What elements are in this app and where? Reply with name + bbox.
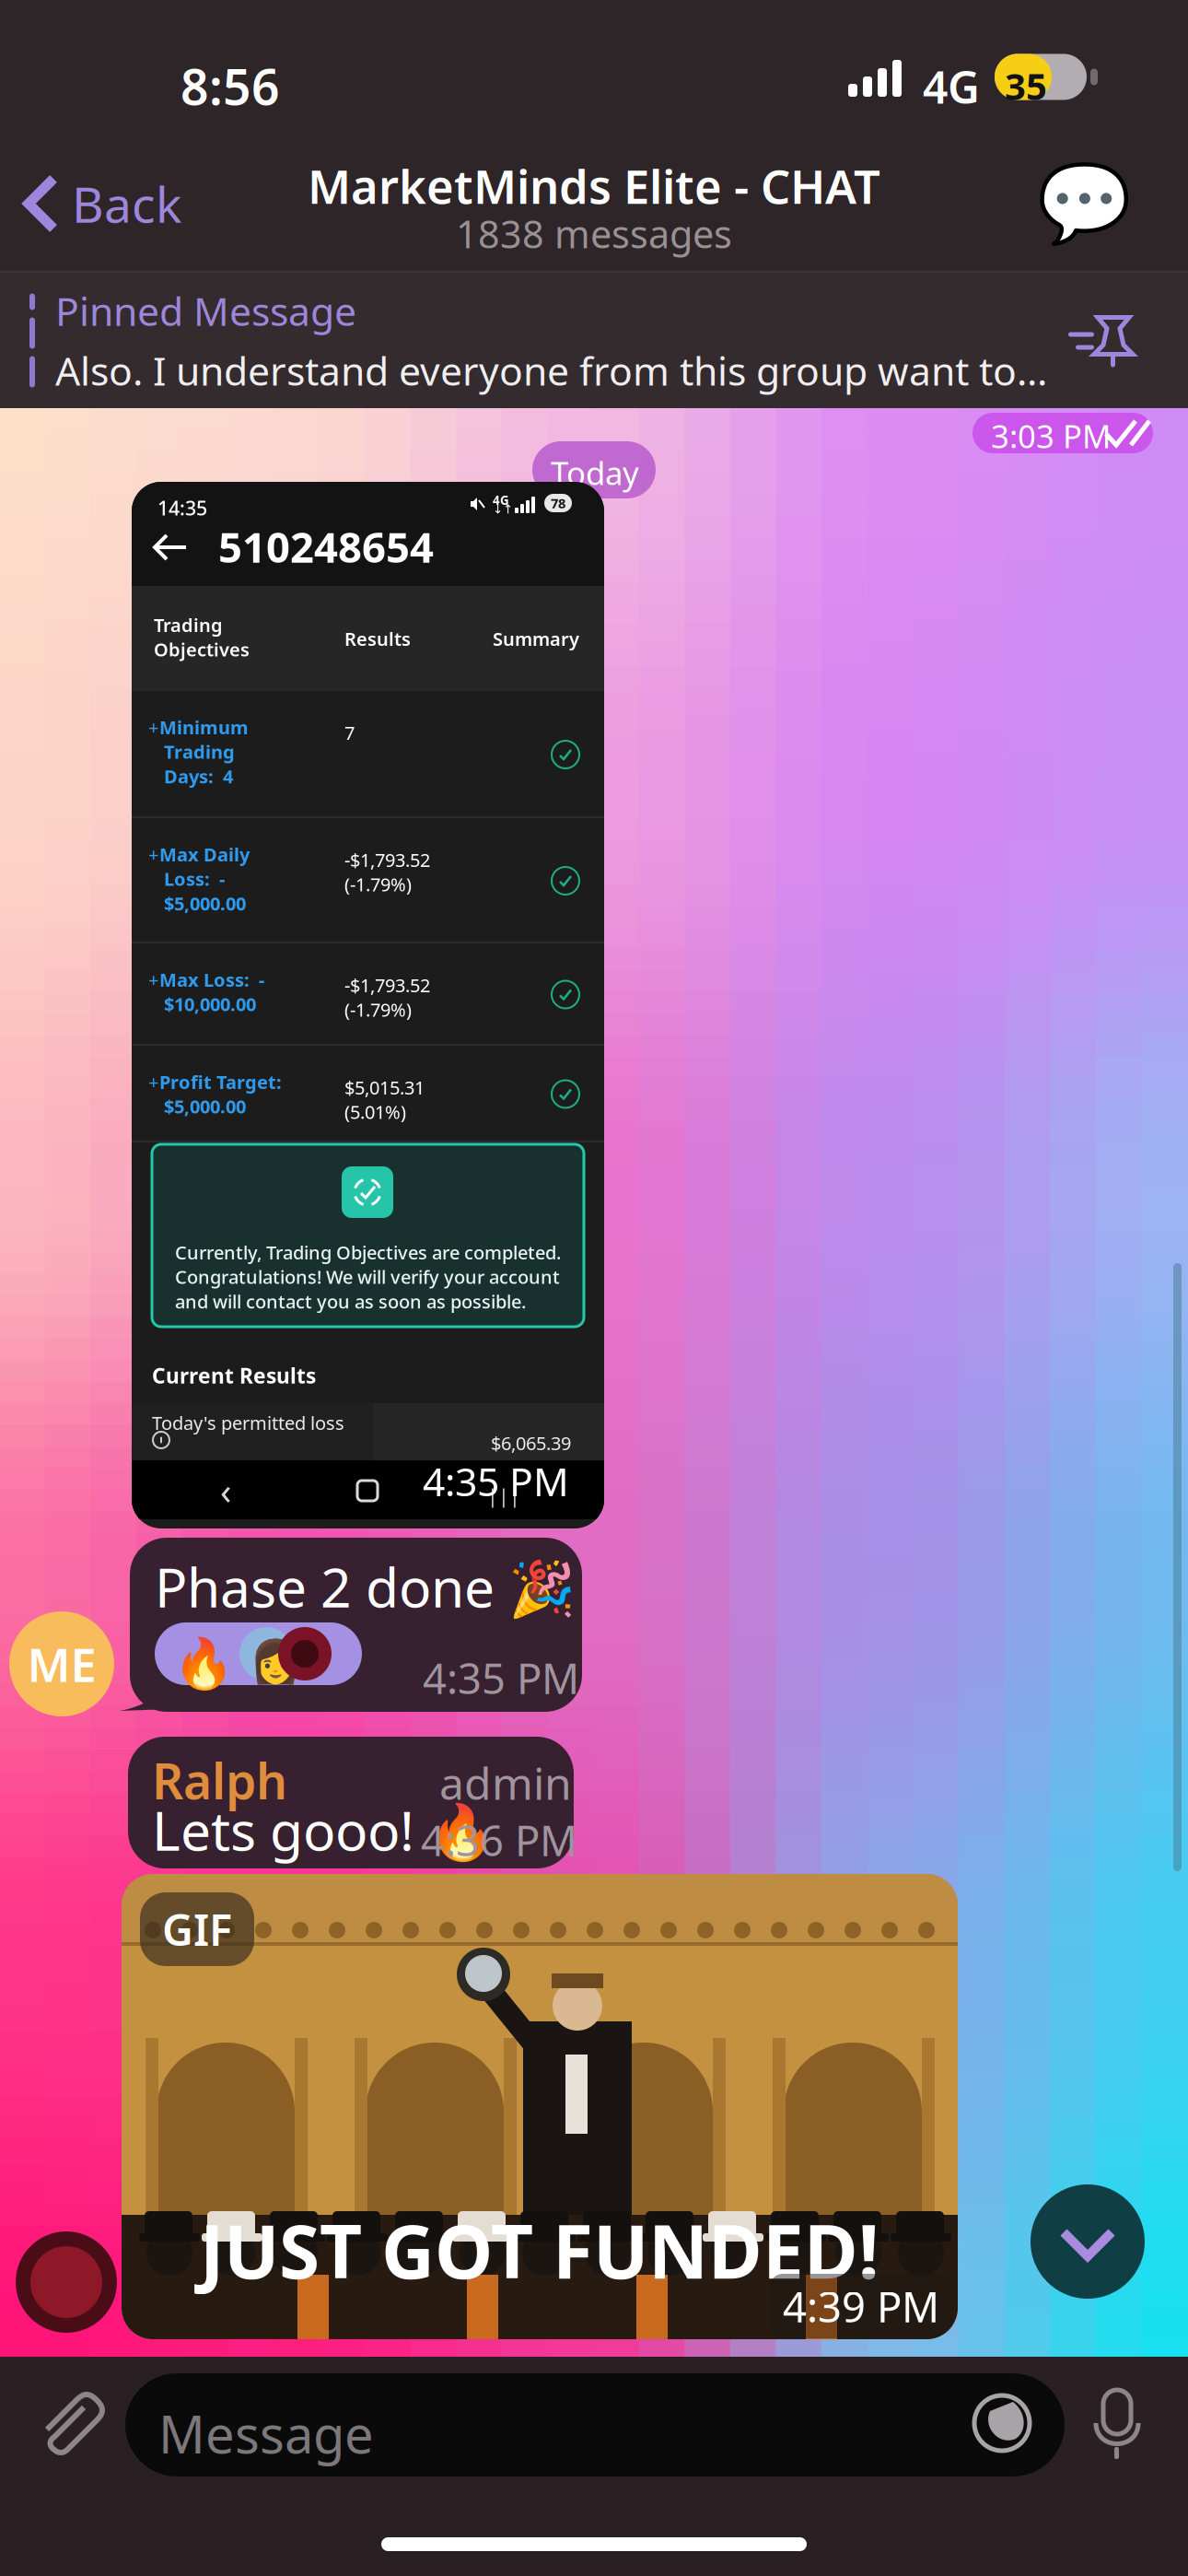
staticText: MarketMinds Elite - CHAT [308, 155, 880, 217]
staticText: Back [72, 171, 181, 236]
staticText: ↓↑ [493, 502, 513, 516]
staticText: Lets gooo! 🔥 [152, 1794, 495, 1866]
staticText: 35 [1005, 61, 1047, 110]
staticText: Currently, Trading Objectives are comple… [175, 1240, 561, 1314]
staticText: $5,015.31 (5.01%) [344, 1075, 425, 1124]
staticText: ||| [487, 1482, 520, 1508]
staticText: Results [344, 626, 411, 651]
staticText: Summary [493, 626, 579, 651]
button[interactable]: Attach [33, 2388, 105, 2460]
staticText: 1838 messages [456, 208, 732, 259]
staticText: Max Loss: - $10,000.00 [159, 967, 264, 1016]
button[interactable]: Scroll to bottom [1031, 2184, 1145, 2299]
button[interactable]: GIF message [122, 1874, 958, 2339]
staticText: 4:36 PM [421, 1812, 577, 1868]
staticText: Max permitted loss [152, 1495, 317, 1520]
staticText: 4:35 PM [423, 1455, 569, 1507]
staticText: 4:35 PM [423, 1650, 579, 1706]
staticText: + [148, 1070, 158, 1094]
button[interactable]: Stickers [974, 2395, 1031, 2453]
button[interactable]: Back [0, 153, 202, 254]
staticText: Trading Objectives [154, 613, 250, 662]
staticText: Pinned Message [55, 285, 356, 337]
staticText: 510248654 [218, 519, 434, 574]
staticText: Minimum Trading Days: 4 [159, 715, 249, 788]
staticText: + [148, 967, 158, 992]
staticText: -$1,793.52 (-1.79%) [344, 973, 430, 1022]
staticText: Also. I understand everyone from this gr… [55, 344, 1047, 396]
staticText: 78 [551, 494, 565, 512]
staticText: admin [439, 1753, 572, 1812]
button[interactable]: Pinned Message [0, 273, 1188, 408]
staticText: Phase 2 done 🎉 😬 [155, 1551, 576, 1684]
button[interactable]: Photo message [132, 482, 604, 1528]
staticText: $6,065.39 [491, 1431, 571, 1455]
staticText: -$1,793.52 (-1.79%) [344, 848, 430, 897]
staticText: Today [551, 451, 639, 494]
staticText: 8:56 [181, 53, 280, 119]
staticText: Profit Target: $5,000.00 [159, 1070, 282, 1119]
staticText: $15,015.31 [491, 1495, 581, 1520]
button[interactable]: Record voice message [1090, 2388, 1144, 2462]
staticText: 🔥 [173, 1635, 234, 1691]
staticText: 4G [923, 57, 980, 116]
staticText: Current Results [152, 1362, 316, 1389]
staticText: 💬 [1037, 160, 1131, 247]
staticText: Message [158, 2399, 374, 2468]
staticText: Ralph [152, 1748, 287, 1813]
staticText: 3:03 PM [991, 415, 1111, 457]
staticText: 7 [344, 720, 355, 745]
staticText: GIF [162, 1901, 232, 1958]
staticText: + [148, 715, 158, 739]
staticText: JUST GOT FUNDED! [200, 2201, 879, 2299]
button[interactable]: Group info [1033, 153, 1135, 254]
staticText: 14:35 [157, 495, 207, 521]
staticText: 👩 [250, 1638, 301, 1686]
staticText: + [148, 842, 158, 867]
staticText: 4G [493, 492, 509, 508]
staticText: ‹ [220, 1466, 231, 1515]
staticText: Max Daily Loss: - $5,000.00 [159, 842, 250, 916]
staticText: Today's permitted loss [152, 1411, 344, 1435]
staticText: 4:39 PM [783, 2278, 939, 2334]
staticText: ME [27, 1633, 96, 1695]
